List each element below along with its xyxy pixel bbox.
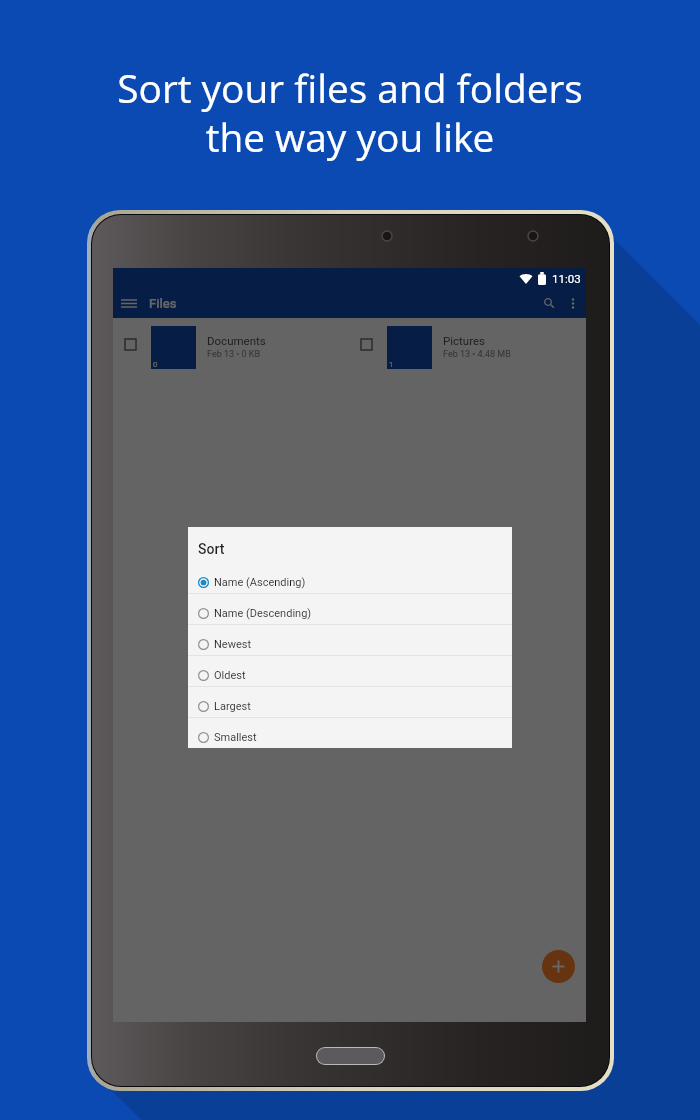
staticText: 0 [153, 360, 158, 369]
button[interactable]: Largest [188, 687, 512, 718]
button[interactable]: Add [542, 950, 575, 983]
staticText: Feb 13 • 0 KB [207, 349, 261, 360]
staticText: Documents [207, 334, 266, 347]
staticText: Oldest [214, 669, 246, 682]
staticText: Pictures [443, 334, 485, 347]
staticText: Name (Ascending) [214, 576, 306, 589]
button[interactable]: Name (Descending) [188, 594, 512, 625]
button[interactable]: Name (Ascending) [188, 563, 512, 594]
button[interactable]: Search [537, 291, 561, 315]
button[interactable]: Newest [188, 625, 512, 656]
button[interactable]: 1 [349, 318, 586, 370]
staticText: Name (Descending) [214, 607, 312, 620]
staticText: Sort [198, 541, 225, 557]
staticText: Feb 13 • 4.48 MB [443, 349, 511, 360]
button[interactable]: Smallest [188, 718, 512, 748]
staticText: Smallest [214, 731, 257, 744]
button[interactable]: Menu [118, 292, 140, 314]
button[interactable]: More options [561, 291, 585, 315]
staticText: 11:03 [552, 272, 581, 285]
staticText: Files [149, 296, 177, 311]
button[interactable]: Oldest [188, 656, 512, 687]
staticText: 1 [389, 360, 394, 369]
staticText: Sort your files and folders the way you … [117, 62, 583, 164]
staticText: Largest [214, 700, 251, 713]
staticText: Newest [214, 638, 252, 651]
button[interactable]: Home [317, 1048, 384, 1064]
button[interactable]: 0 [113, 318, 349, 370]
